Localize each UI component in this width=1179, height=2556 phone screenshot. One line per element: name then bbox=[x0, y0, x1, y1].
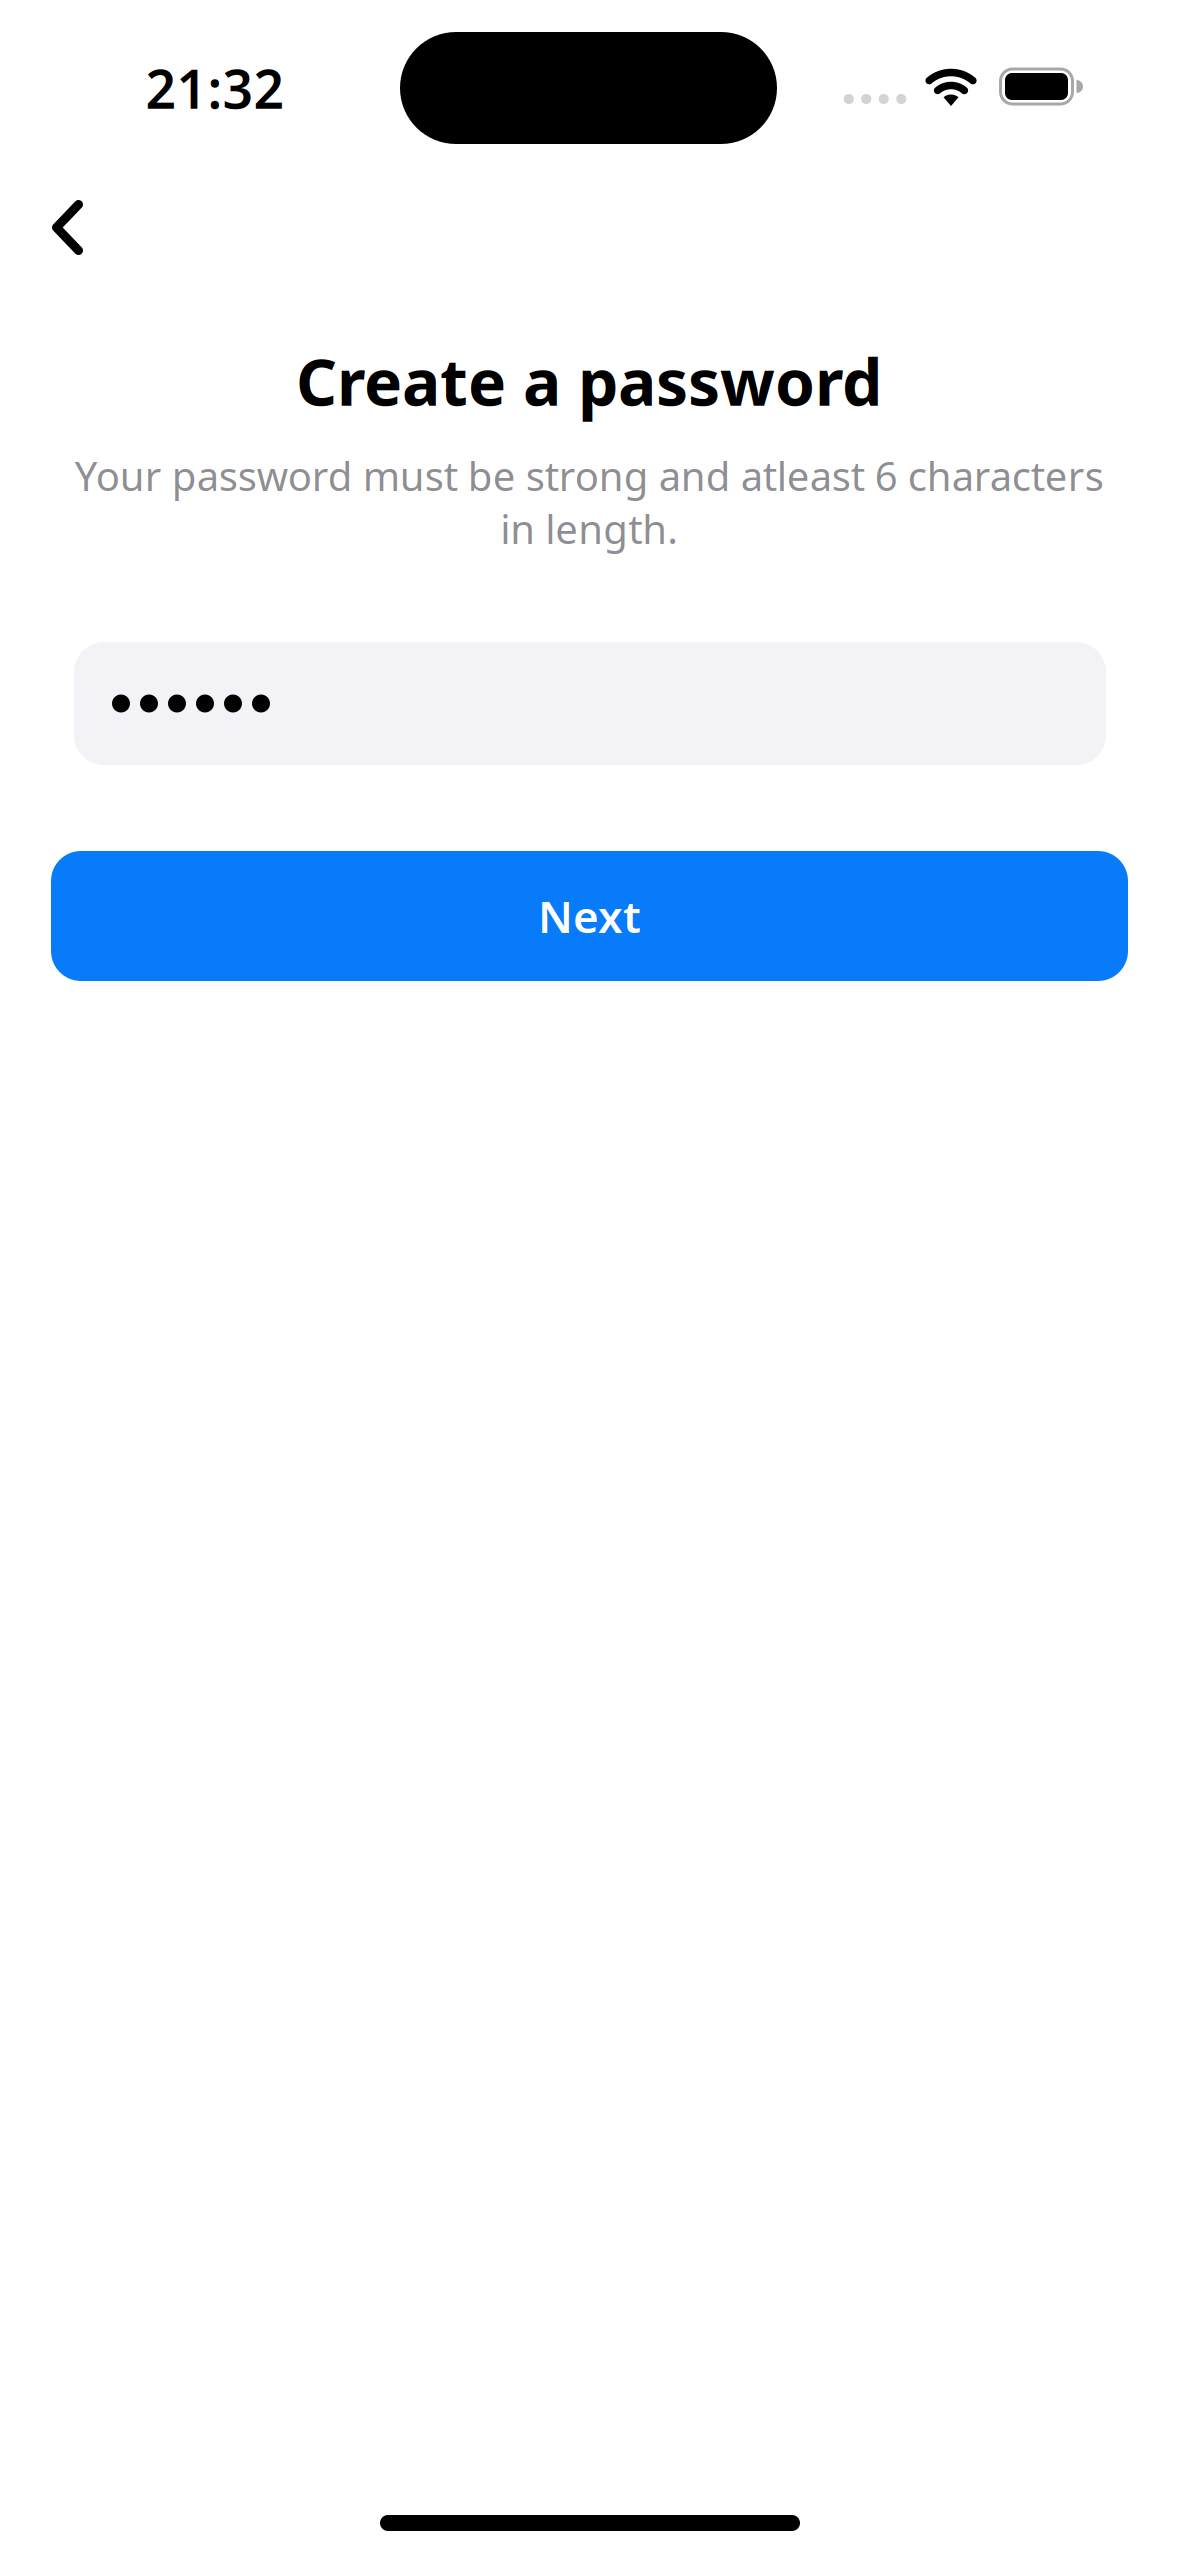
staticText: Next bbox=[538, 887, 641, 945]
staticText: Your password must be strong and atleast… bbox=[74, 449, 1103, 555]
button[interactable]: Back bbox=[52, 200, 83, 255]
button[interactable]: Password bbox=[74, 642, 1106, 765]
staticText: Create a password bbox=[296, 338, 882, 423]
button[interactable]: Next bbox=[51, 851, 1128, 981]
staticText: 21:32 bbox=[145, 53, 284, 123]
